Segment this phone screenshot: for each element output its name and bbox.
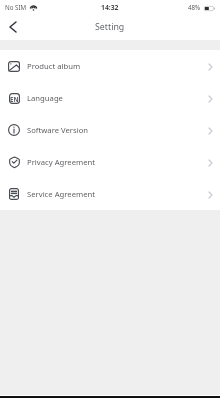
button[interactable]: Back [0, 14, 26, 40]
button[interactable]: Privacy Agreement [0, 146, 220, 178]
staticText: No SIM [5, 3, 27, 11]
staticText: Setting [95, 21, 125, 33]
staticText: Service Agreement [27, 189, 96, 199]
staticText: EN [10, 95, 19, 103]
button[interactable]: EN [0, 82, 220, 114]
staticText: Privacy Agreement [27, 157, 96, 167]
button[interactable]: Product album [0, 50, 220, 82]
staticText: 14:32 [101, 3, 119, 12]
button[interactable]: Software Version [0, 114, 220, 146]
staticText: 48% [188, 3, 201, 11]
staticText: Software Version [27, 125, 89, 135]
staticText: Language [27, 93, 63, 103]
staticText: Product album [27, 61, 81, 71]
button[interactable]: Service Agreement [0, 178, 220, 210]
